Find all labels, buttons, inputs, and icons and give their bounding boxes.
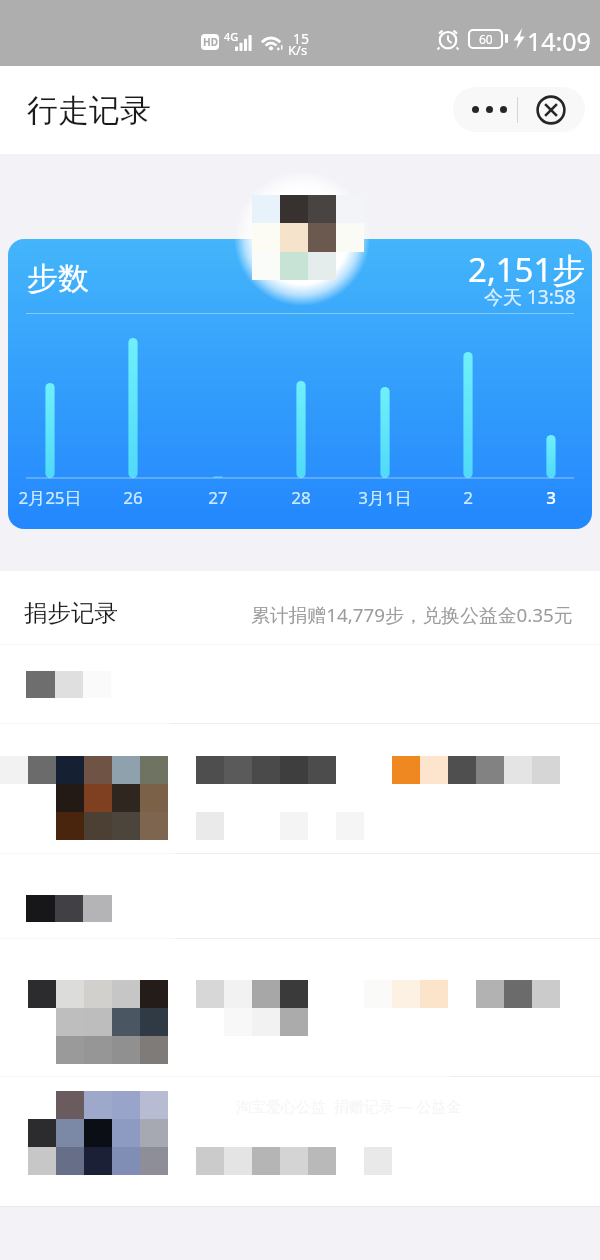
- button[interactable]: Close: [518, 87, 584, 132]
- staticText: 今天 13:58: [484, 284, 576, 310]
- staticText: HD: [203, 35, 218, 49]
- staticText: 27: [208, 486, 228, 509]
- staticText: 4G: [224, 29, 239, 44]
- staticText: 步数: [27, 259, 89, 298]
- staticText: 15: [293, 29, 310, 48]
- button[interactable]: [0, 939, 600, 1076]
- staticText: 28: [291, 486, 311, 509]
- staticText: K/s: [288, 41, 308, 59]
- button[interactable]: 淘宝爱心公益 捐赠记录 — 公益金: [0, 1077, 600, 1204]
- staticText: 2月25日: [18, 486, 82, 509]
- button[interactable]: 步数: [8, 239, 592, 529]
- staticText: 捐步记录: [24, 598, 118, 628]
- button[interactable]: [0, 854, 600, 938]
- staticText: 行走记录: [27, 91, 151, 130]
- staticText: 淘宝爱心公益 捐赠记录 — 公益金: [236, 1096, 462, 1116]
- staticText: 累计捐赠14,779步，兑换公益金0.35元: [251, 602, 573, 628]
- staticText: 3: [546, 486, 556, 509]
- staticText: 26: [123, 486, 143, 509]
- staticText: 2,151步: [468, 247, 586, 292]
- staticText: 60: [479, 31, 493, 47]
- staticText: 3月1日: [358, 486, 412, 509]
- staticText: 2: [463, 486, 473, 509]
- button[interactable]: More options: [453, 87, 517, 132]
- button[interactable]: [0, 724, 600, 853]
- button[interactable]: [0, 655, 600, 723]
- staticText: 14:09: [527, 24, 591, 58]
